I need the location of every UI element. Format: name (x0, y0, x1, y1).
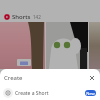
staticText: 142 (33, 14, 41, 20)
button[interactable]: Shorts (0, 11, 100, 22)
button[interactable] (89, 22, 100, 69)
staticText: New (86, 91, 95, 96)
button[interactable]: Close (87, 73, 96, 82)
button[interactable]: New (85, 90, 96, 96)
staticText: Shorts (12, 13, 31, 21)
button[interactable] (46, 22, 88, 69)
staticText: Create (4, 74, 23, 82)
staticText: Create a Short (15, 90, 49, 97)
button[interactable] (0, 22, 45, 69)
button[interactable]: Create a Short (3, 86, 96, 100)
